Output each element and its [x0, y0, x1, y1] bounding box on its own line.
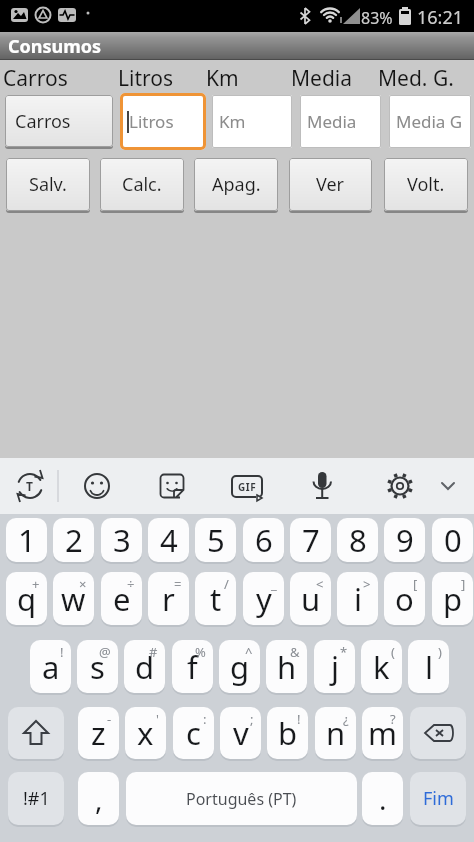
button[interactable]: s — [77, 640, 118, 693]
button[interactable]: e — [101, 572, 142, 625]
button[interactable]: a — [30, 640, 71, 693]
button[interactable]: Litros — [120, 93, 206, 150]
staticText: Apag. — [212, 172, 261, 197]
button[interactable] — [0, 458, 58, 514]
staticText: !#1 — [23, 786, 50, 811]
button[interactable]: o — [384, 572, 425, 625]
staticText: = — [174, 575, 182, 593]
staticText: ' — [156, 710, 159, 728]
button[interactable]: j — [314, 640, 355, 693]
staticText: h — [277, 646, 297, 688]
staticText: a — [42, 646, 60, 688]
button[interactable]: f — [172, 640, 213, 693]
button[interactable] — [361, 458, 436, 514]
staticText: @ — [99, 643, 111, 661]
staticText: Português (PT) — [186, 788, 297, 810]
button[interactable] — [136, 458, 211, 514]
staticText: j — [331, 646, 339, 688]
staticText: ] — [461, 575, 466, 593]
button[interactable] — [286, 458, 361, 514]
button[interactable] — [58, 458, 136, 514]
button[interactable]: 7 — [290, 518, 331, 562]
staticText: q — [17, 578, 37, 620]
button[interactable]: r — [148, 572, 189, 625]
staticText: s — [90, 646, 105, 688]
staticText: > — [363, 575, 371, 593]
staticText: Med. G. — [378, 64, 454, 93]
button[interactable]: 5 — [195, 518, 236, 562]
button[interactable]: v — [220, 707, 261, 759]
staticText: b — [278, 712, 298, 754]
staticText: o — [395, 578, 414, 620]
button[interactable]: z — [78, 707, 119, 759]
button[interactable]: d — [124, 640, 165, 693]
staticText: 8 — [349, 519, 367, 561]
staticText: 1 — [18, 519, 36, 561]
button[interactable]: i — [337, 572, 378, 625]
button[interactable]: 2 — [53, 518, 94, 562]
button[interactable]: h — [266, 640, 307, 693]
staticText: e — [113, 578, 131, 620]
button[interactable] — [410, 707, 466, 759]
staticText: y — [256, 578, 272, 620]
button[interactable]: p — [432, 572, 473, 625]
button[interactable]: Km — [212, 95, 292, 148]
button[interactable] — [436, 458, 474, 514]
staticText: i — [354, 578, 362, 620]
staticText: f — [187, 646, 198, 688]
button[interactable]: k — [361, 640, 402, 693]
staticText: x — [137, 712, 154, 754]
button[interactable]: t — [195, 572, 236, 625]
button[interactable]: Ver — [289, 158, 372, 211]
button[interactable]: . — [362, 772, 403, 825]
button[interactable]: 6 — [243, 518, 284, 562]
button[interactable]: !#1 — [8, 772, 64, 825]
staticText: g — [230, 646, 250, 688]
button[interactable]: 8 — [337, 518, 378, 562]
staticText: k — [373, 646, 390, 688]
button[interactable]: g — [219, 640, 260, 693]
staticText: Litros — [118, 64, 174, 93]
button[interactable]: , — [78, 772, 119, 825]
staticText: l — [425, 646, 433, 688]
button[interactable]: q — [6, 572, 47, 625]
button[interactable]: 0 — [432, 518, 473, 562]
staticText: 0 — [444, 519, 462, 561]
button[interactable]: m — [362, 707, 403, 759]
button[interactable]: 9 — [384, 518, 425, 562]
button[interactable]: b — [267, 707, 308, 759]
staticText: ¿ — [343, 710, 349, 728]
button[interactable] — [211, 458, 286, 514]
button[interactable]: Fim — [410, 772, 466, 825]
staticText: z — [91, 712, 106, 754]
button[interactable]: Media G — [389, 95, 471, 148]
button[interactable]: Calc. — [100, 158, 184, 211]
staticText: n — [326, 712, 346, 754]
button[interactable]: l — [408, 640, 449, 693]
staticText: 6 — [255, 519, 273, 561]
staticText: _ — [271, 575, 277, 593]
button[interactable]: n — [315, 707, 356, 759]
button[interactable]: Salv. — [6, 158, 90, 211]
button[interactable]: Media — [300, 95, 381, 148]
button[interactable]: x — [125, 707, 166, 759]
button[interactable]: Português (PT) — [126, 772, 357, 825]
button[interactable]: 3 — [101, 518, 142, 562]
staticText: GIF — [238, 480, 257, 494]
button[interactable]: w — [53, 572, 94, 625]
button[interactable]: 4 — [148, 518, 189, 562]
staticText: + — [32, 575, 40, 593]
staticText: Carros — [15, 109, 71, 134]
button[interactable]: y — [243, 572, 284, 625]
button[interactable]: Volt. — [384, 158, 468, 211]
button[interactable]: c — [173, 707, 214, 759]
button[interactable]: u — [290, 572, 331, 625]
staticText: Salv. — [29, 172, 67, 197]
staticText: % — [195, 643, 206, 661]
button[interactable]: Carros — [5, 95, 113, 147]
staticText: Km — [206, 64, 239, 93]
button[interactable]: Apag. — [194, 158, 278, 211]
button[interactable] — [8, 707, 64, 759]
button[interactable]: 1 — [6, 518, 47, 562]
staticText: ! — [60, 643, 64, 661]
